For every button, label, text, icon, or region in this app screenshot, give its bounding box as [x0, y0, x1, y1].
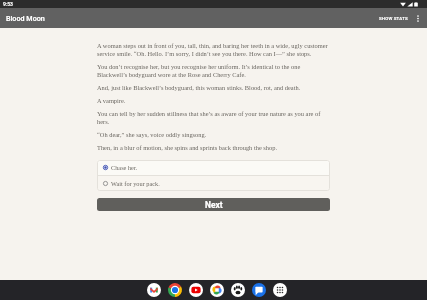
staticText: Chase her. [111, 164, 138, 171]
staticText: Blood Moon [6, 14, 45, 22]
staticText: A vampire. [97, 97, 126, 104]
staticText: You can tell by her sudden stillness tha… [97, 110, 330, 125]
button[interactable]: Pets [231, 283, 245, 297]
staticText: Wait for your pack. [111, 180, 160, 187]
staticText: “Oh dear,” she says, voice oddly singson… [97, 131, 207, 138]
staticText: 9:53 [3, 1, 13, 7]
staticText: A woman steps out in front of you, tall,… [97, 42, 330, 57]
button[interactable]: Next [97, 198, 330, 211]
button[interactable]: Chase her. [97, 160, 330, 175]
staticText: Then, in a blur of motion, she spins and… [97, 144, 277, 151]
staticText: And, just like Blackwell’s bodyguard, th… [97, 84, 301, 91]
button[interactable]: Messages [252, 283, 266, 297]
button[interactable]: Wait for your pack. [97, 176, 330, 191]
button[interactable]: SHOW STATS [375, 11, 412, 26]
button[interactable]: YouTube [189, 283, 203, 297]
staticText: SHOW STATS [379, 16, 408, 21]
staticText: You don’t recognise her, but you recogni… [97, 63, 330, 78]
button[interactable]: Chrome [168, 283, 182, 297]
button[interactable]: More options [412, 11, 424, 26]
button[interactable]: All apps [273, 283, 287, 297]
button[interactable]: Gmail [147, 283, 161, 297]
staticText: Next [205, 200, 223, 210]
button[interactable]: Photos [210, 283, 224, 297]
